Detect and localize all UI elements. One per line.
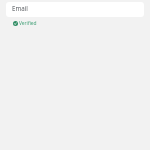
staticText: Verified: [19, 20, 37, 27]
other: Verified: [13, 21, 18, 26]
button[interactable]: Email: [6, 2, 144, 17]
button[interactable]: Verified: [13, 20, 37, 27]
staticText: Email: [12, 4, 28, 12]
